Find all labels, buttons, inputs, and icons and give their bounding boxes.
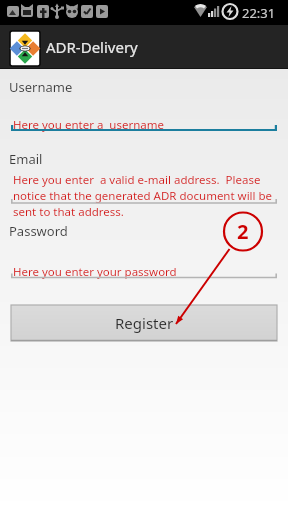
staticText: Register [115,313,174,333]
staticText: Here you enter your password [13,264,177,280]
staticText: Password [9,222,68,240]
button[interactable]: Here you enter a username [11,114,278,133]
staticText: Here you enter a valid e-mail address. P… [13,172,261,188]
staticText: 22:31 [242,4,276,22]
staticText: Here you enter a username [13,117,164,133]
staticText: notice that the generated ADR document w… [13,188,273,204]
staticText: Email [9,150,43,168]
staticText: 2 [237,218,249,245]
staticText: ADR-Delivery [46,37,138,57]
button[interactable]: Here you enter your password [11,261,278,282]
staticText: sent to that address. [13,204,124,220]
button[interactable] [11,167,278,205]
staticText: Username [9,78,73,96]
button[interactable]: Register [11,305,277,341]
